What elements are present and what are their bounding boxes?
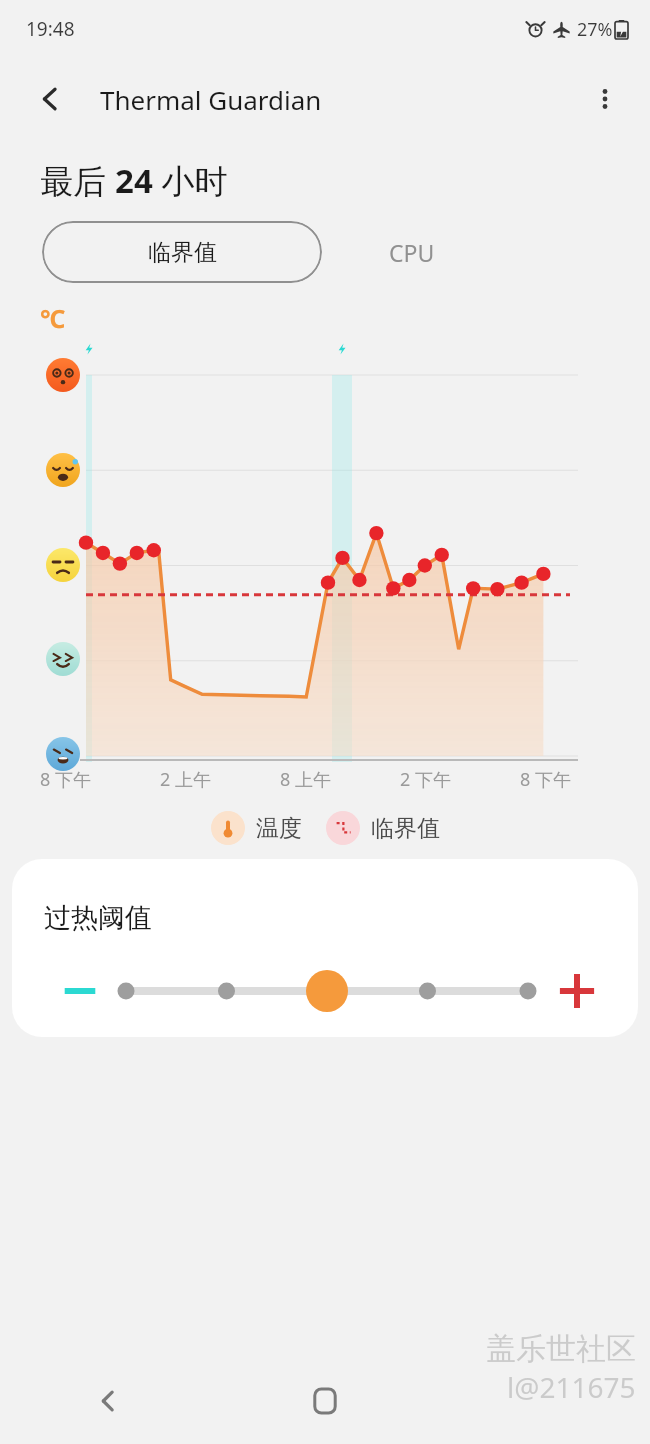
button[interactable]: Recents	[433, 1358, 650, 1444]
button[interactable]: Decrease threshold	[54, 965, 106, 1017]
button[interactable]	[116, 966, 538, 1016]
button[interactable]: CPU	[322, 221, 502, 283]
button[interactable]: Home	[216, 1358, 433, 1444]
staticText: 最后	[40, 158, 115, 203]
staticText: 临界值	[148, 238, 217, 267]
staticText: CPU	[389, 237, 435, 268]
staticText: 小时	[153, 158, 228, 203]
staticText: 8 下午	[520, 767, 616, 792]
button[interactable]: Back	[28, 77, 72, 121]
staticText: 8 下午	[40, 767, 136, 792]
staticText: 24	[115, 158, 153, 203]
staticText: l@211675	[507, 1368, 636, 1406]
button[interactable]: More options	[582, 76, 628, 122]
button[interactable]: Increase threshold	[550, 964, 604, 1018]
staticText: 2 上午	[160, 767, 256, 792]
button[interactable]: 临界值	[42, 221, 322, 283]
staticText: ℃	[40, 301, 66, 335]
staticText: 盖乐世社区	[486, 1330, 636, 1368]
staticText: 临界值	[371, 814, 440, 843]
button[interactable]: Back	[0, 1358, 216, 1444]
staticText: 8 上午	[280, 767, 376, 792]
staticText: 2 下午	[400, 767, 496, 792]
staticText: 27%	[577, 17, 613, 42]
staticText: 19:48	[26, 16, 75, 42]
staticText: 温度	[256, 814, 302, 843]
staticText: Thermal Guardian	[100, 82, 322, 117]
staticText: 过热阈值	[44, 901, 152, 935]
